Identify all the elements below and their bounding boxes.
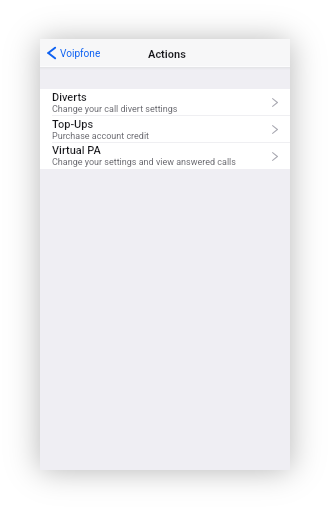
staticText: Virtual PA bbox=[52, 144, 101, 157]
button[interactable]: Voipfone bbox=[40, 44, 107, 62]
staticText: Top-Ups bbox=[52, 118, 94, 131]
staticText: Change your settings and view answered c… bbox=[52, 157, 236, 168]
button[interactable]: Top-Ups bbox=[40, 116, 290, 143]
staticText: Change your call divert settings bbox=[52, 104, 178, 115]
staticText: Voipfone bbox=[60, 48, 101, 60]
staticText: Actions bbox=[148, 48, 186, 61]
button[interactable]: Virtual PA bbox=[40, 143, 290, 169]
staticText: Purchase account credit bbox=[52, 131, 150, 142]
button[interactable]: Diverts bbox=[40, 89, 290, 116]
staticText: Diverts bbox=[52, 91, 87, 104]
